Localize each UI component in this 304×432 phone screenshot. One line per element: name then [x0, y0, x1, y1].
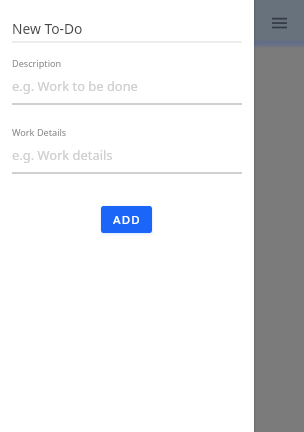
button[interactable]: e.g. Work details	[12, 144, 242, 174]
staticText: Work Details	[12, 126, 67, 138]
staticText: New To-Do	[12, 19, 83, 38]
staticText: ADD	[113, 212, 141, 228]
button[interactable]: ADD	[101, 206, 152, 233]
button[interactable]: e.g. Work to be done	[12, 75, 242, 105]
staticText: e.g. Work details	[12, 146, 113, 164]
button[interactable]: Close navigation drawer	[0, 0, 304, 432]
button[interactable]: Open navigation drawer	[264, 7, 295, 38]
staticText: e.g. Work to be done	[12, 77, 138, 95]
staticText: Description	[12, 57, 62, 69]
